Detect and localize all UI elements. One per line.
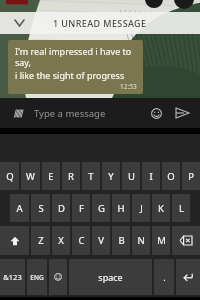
staticText: M (157, 234, 166, 247)
staticText: T (88, 170, 94, 183)
button[interactable]: L (172, 194, 190, 222)
button[interactable]: Collapse (0, 12, 200, 34)
button[interactable]: Y (102, 162, 120, 190)
button[interactable]: Shift (0, 226, 29, 255)
button[interactable]: Send (172, 103, 192, 123)
button[interactable]: D (52, 194, 70, 222)
button[interactable]: K (152, 194, 170, 222)
staticText: U (128, 170, 135, 183)
button[interactable]: W (21, 162, 40, 190)
staticText: V (98, 234, 104, 247)
button[interactable]: Attach (8, 103, 28, 123)
staticText: Y (108, 170, 114, 183)
staticText: K (158, 202, 164, 215)
button[interactable]: . (154, 259, 174, 295)
button[interactable]: I'm real impressed i have to say, (8, 40, 143, 94)
button[interactable]: E (42, 162, 60, 190)
button[interactable]: Enter (176, 259, 200, 295)
button[interactable]: F (72, 194, 90, 222)
button[interactable]: B (112, 226, 130, 255)
button[interactable]: C (72, 226, 90, 255)
button[interactable]: ENG (27, 259, 47, 295)
button[interactable]: S (31, 194, 50, 222)
staticText: W (26, 170, 35, 183)
staticText: I (149, 170, 153, 183)
staticText: Z (38, 234, 44, 247)
staticText: 1 UNREAD MESSAGE (53, 17, 147, 29)
staticText: . (163, 271, 166, 283)
button[interactable]: Type a message (34, 107, 146, 120)
staticText: I'm real impressed i have to say, (15, 45, 137, 69)
staticText: J (140, 202, 143, 215)
button[interactable]: &123 (0, 259, 25, 295)
button[interactable]: G (92, 194, 110, 222)
staticText: P (188, 170, 194, 183)
button[interactable]: T (82, 162, 100, 190)
button[interactable]: A (10, 194, 29, 222)
button[interactable]: M (152, 226, 170, 255)
staticText: i like the sight of progress (15, 69, 125, 81)
staticText: R (68, 170, 74, 183)
button[interactable]: Q (0, 162, 19, 190)
button[interactable]: R (62, 162, 80, 190)
staticText: A (16, 202, 23, 215)
staticText: B (118, 234, 125, 247)
staticText: G (98, 202, 105, 215)
staticText: &123 (3, 272, 22, 282)
button[interactable]: H (112, 194, 130, 222)
button[interactable]: Emoji (146, 103, 166, 123)
staticText: Q (6, 170, 14, 183)
staticText: S (38, 202, 44, 215)
button[interactable]: P (182, 162, 200, 190)
button[interactable]: V (92, 226, 110, 255)
staticText: ENG (30, 273, 44, 282)
button[interactable]: O (162, 162, 180, 190)
button[interactable]: Backspace (172, 226, 200, 255)
staticText: O (167, 170, 175, 183)
button[interactable]: I (142, 162, 160, 190)
button[interactable]: Collapse (10, 14, 28, 32)
button[interactable]: Emoji keyboard (49, 259, 67, 295)
button[interactable]: space (69, 259, 152, 295)
staticText: space (98, 271, 123, 283)
staticText: L (179, 202, 184, 215)
button[interactable]: Z (31, 226, 50, 255)
staticText: N (137, 234, 145, 247)
staticText: F (79, 202, 84, 215)
staticText: E (48, 170, 54, 183)
staticText: 12:53 (120, 82, 137, 91)
button[interactable]: J (132, 194, 150, 222)
staticText: C (78, 234, 85, 247)
button[interactable]: U (122, 162, 140, 190)
staticText: H (117, 202, 125, 215)
staticText: D (58, 202, 65, 215)
button[interactable]: X (52, 226, 70, 255)
staticText: X (58, 234, 64, 247)
button[interactable]: N (132, 226, 150, 255)
